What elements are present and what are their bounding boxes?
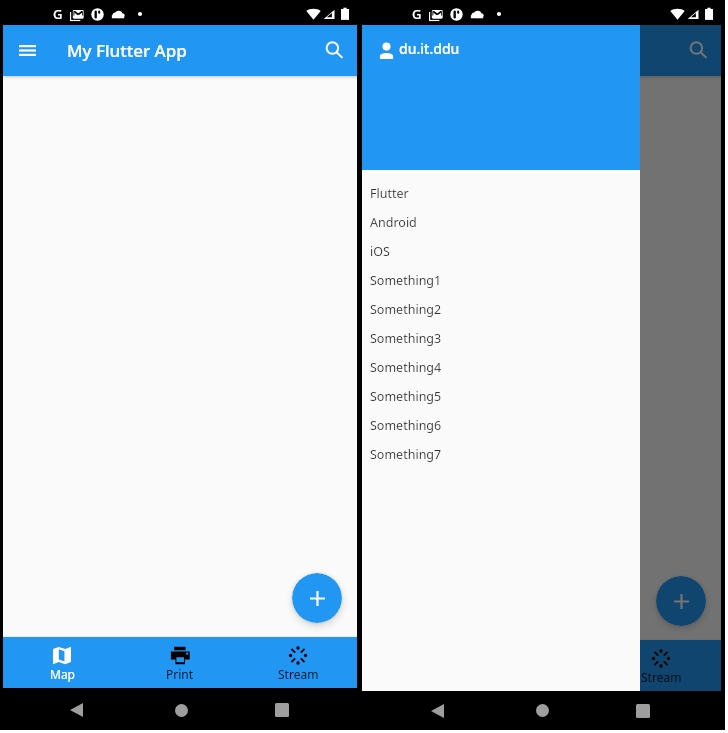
staticText: Stream: [278, 666, 319, 682]
button[interactable]: Home: [136, 690, 226, 730]
button[interactable]: Map: [3, 637, 121, 688]
button[interactable]: Stream: [601, 640, 721, 691]
button[interactable]: Recent apps: [237, 690, 327, 730]
staticText: Something2: [370, 301, 442, 318]
staticText: Something6: [370, 417, 442, 434]
staticText: Something3: [370, 330, 442, 347]
button[interactable]: Something1: [362, 266, 640, 295]
button[interactable]: Open navigation menu: [3, 25, 52, 76]
button[interactable]: Something7: [362, 440, 640, 469]
button[interactable]: Stream: [239, 637, 357, 688]
staticText: du.it.ddu: [399, 39, 460, 58]
button[interactable]: Add: [292, 573, 342, 623]
button[interactable]: Open navigation menu: [362, 25, 411, 76]
button[interactable]: Something5: [362, 382, 640, 411]
staticText: Flutter: [370, 185, 409, 202]
button[interactable]: Back: [395, 691, 479, 730]
staticText: My Flutter App: [426, 39, 546, 62]
button[interactable]: Home: [497, 691, 587, 730]
staticText: iOS: [370, 243, 390, 260]
button[interactable]: Android: [362, 208, 640, 237]
button[interactable]: Back: [34, 690, 118, 730]
button[interactable]: Recent apps: [598, 691, 688, 730]
staticText: Something7: [370, 446, 442, 463]
button[interactable]: Search: [675, 25, 721, 76]
button[interactable]: Something4: [362, 353, 640, 382]
button[interactable]: iOS: [362, 237, 640, 266]
button[interactable]: Something2: [362, 295, 640, 324]
staticText: My Flutter App: [67, 39, 187, 62]
staticText: Something1: [370, 272, 442, 289]
button[interactable]: Something6: [362, 411, 640, 440]
staticText: Map: [50, 666, 75, 682]
staticText: G: [53, 5, 63, 23]
staticText: G: [412, 5, 422, 23]
button[interactable]: Print: [121, 637, 239, 688]
button[interactable]: Search: [311, 25, 357, 76]
button[interactable]: Flutter: [362, 179, 640, 208]
staticText: Android: [370, 214, 417, 231]
button[interactable]: Add: [656, 576, 706, 626]
staticText: Stream: [641, 669, 682, 685]
button[interactable]: Something3: [362, 324, 640, 353]
staticText: Something5: [370, 388, 442, 405]
staticText: Something4: [370, 359, 442, 376]
staticText: Print: [166, 666, 194, 682]
